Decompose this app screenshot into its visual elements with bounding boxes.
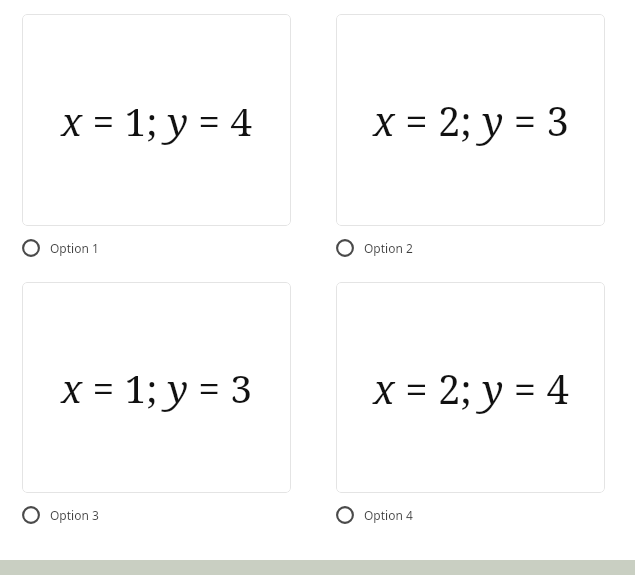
button[interactable]: Select Option 1 bbox=[22, 235, 99, 261]
button[interactable]: Select Option 2 bbox=[336, 235, 413, 261]
staticText: Option 3 bbox=[50, 507, 99, 523]
button[interactable]: Select Option 4 bbox=[336, 502, 413, 528]
other: Select Option 2 bbox=[336, 239, 354, 257]
other: Select Option 3 bbox=[22, 506, 40, 524]
staticText: Option 4 bbox=[364, 507, 413, 523]
button[interactable]: x = 2; y = 4 bbox=[336, 282, 605, 493]
button[interactable]: x = 1; y = 4 bbox=[22, 14, 291, 226]
button[interactable]: x = 1; y = 3 bbox=[22, 282, 291, 493]
staticText: Option 1 bbox=[50, 240, 99, 256]
button[interactable]: Select Option 3 bbox=[22, 502, 99, 528]
staticText: Option 2 bbox=[364, 240, 413, 256]
staticText: x = 1; y = 4 bbox=[61, 94, 252, 147]
staticText: x = 2; y = 3 bbox=[373, 93, 569, 147]
other: Select Option 4 bbox=[336, 506, 354, 524]
staticText: x = 1; y = 3 bbox=[61, 361, 252, 414]
other: Select Option 1 bbox=[22, 239, 40, 257]
button[interactable]: x = 2; y = 3 bbox=[336, 14, 605, 226]
staticText: x = 2; y = 4 bbox=[373, 361, 569, 415]
